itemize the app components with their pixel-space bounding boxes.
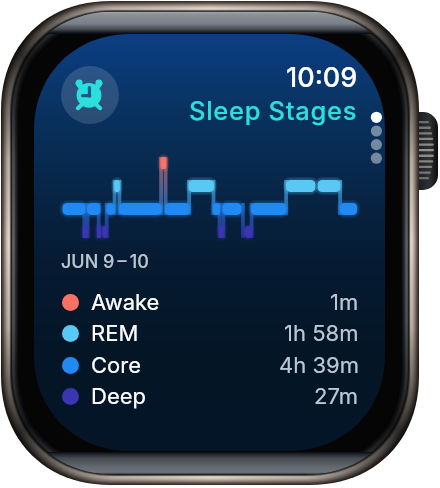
staticText: JUN 9 – 10 [61, 251, 149, 273]
staticText: 27m [314, 383, 359, 410]
staticText: 1m [330, 289, 359, 316]
button[interactable]: REM [62, 317, 359, 349]
staticText: Deep [91, 383, 146, 410]
button[interactable]: Alarm [61, 66, 119, 124]
staticText: 4h 39m [279, 352, 359, 379]
staticText: 1h 58m [284, 320, 359, 347]
staticText: Sleep Stages [189, 95, 358, 126]
staticText: Core [91, 352, 142, 379]
button[interactable]: Deep [62, 380, 359, 412]
button[interactable]: Awake [62, 286, 359, 318]
staticText: 10:09 [286, 61, 358, 94]
button[interactable]: Core [62, 349, 359, 381]
staticText: Awake [91, 289, 160, 316]
staticText: REM [91, 320, 139, 347]
